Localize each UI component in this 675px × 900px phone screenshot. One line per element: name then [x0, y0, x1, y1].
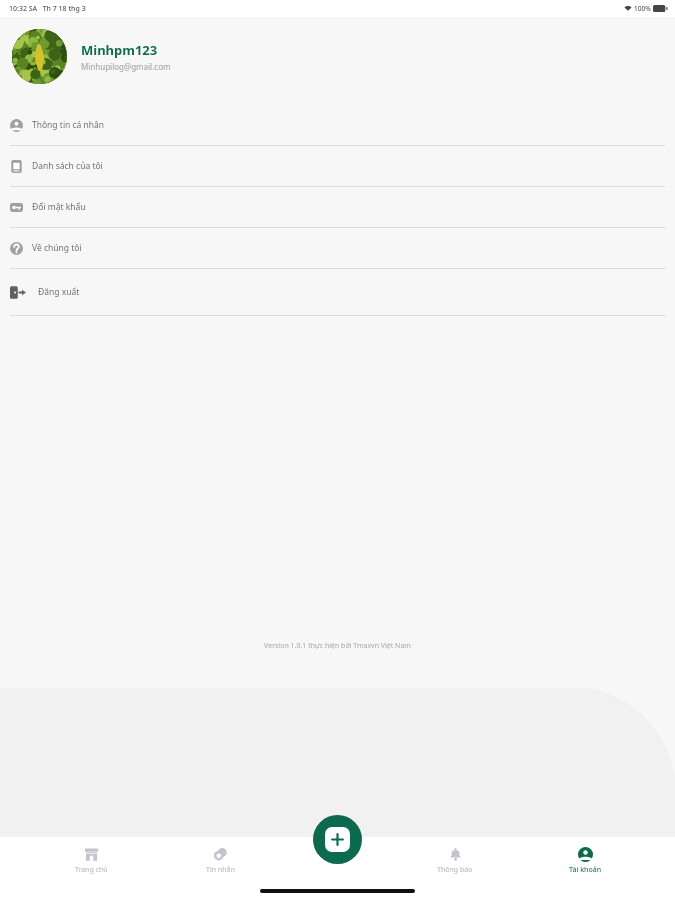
button[interactable]: Đăng xuất	[0, 269, 675, 315]
staticText: 100%	[634, 4, 651, 13]
button[interactable]: Về chúng tôi	[0, 228, 675, 268]
button[interactable]: Thêm mới	[313, 815, 362, 864]
staticText: Minhupilog@gmail.com	[81, 61, 171, 72]
staticText: Tin nhắn	[206, 865, 235, 875]
staticText: 10:32 SA Th 7 18 thg 3	[9, 4, 86, 14]
button[interactable]: Thông báo	[416, 847, 494, 875]
staticText: Thông tin cá nhân	[32, 119, 105, 131]
staticText: Tài khoản	[569, 865, 602, 875]
staticText: Trang chủ	[75, 865, 108, 875]
button[interactable]: Trang chủ	[52, 847, 130, 875]
button[interactable]: Danh sách của tôi	[0, 146, 675, 186]
staticText: Đổi mật khẩu	[32, 201, 86, 213]
staticText: Minhpm123	[81, 41, 158, 59]
staticText: Đăng xuất	[38, 286, 80, 298]
button[interactable]: Tài khoản	[546, 847, 624, 875]
button[interactable]: Tin nhắn	[181, 847, 259, 875]
staticText: Về chúng tôi	[32, 242, 82, 254]
button[interactable]: Minhpm123	[0, 17, 675, 95]
staticText: Thông báo	[437, 865, 473, 875]
button[interactable]: Thông tin cá nhân	[0, 105, 675, 145]
staticText: Version 1.0.1 thực hiện bởi Tmaxvn Việt …	[0, 641, 675, 651]
staticText: Danh sách của tôi	[32, 160, 103, 172]
button[interactable]: Đổi mật khẩu	[0, 187, 675, 227]
